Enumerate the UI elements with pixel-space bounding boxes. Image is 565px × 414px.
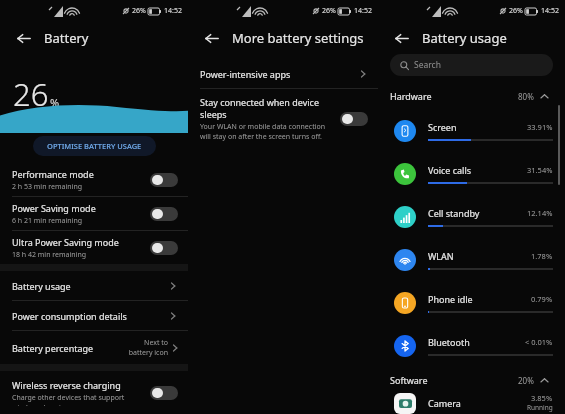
staticText: battery icon: [128, 348, 168, 358]
staticText: will stay on after the screen turns off.: [200, 132, 322, 142]
other: Back: [394, 31, 409, 46]
button[interactable]: Power-intensive apps: [188, 60, 378, 88]
button[interactable]: Stay connected when device sleeps: [188, 89, 378, 149]
button[interactable]: Camera: [378, 393, 565, 414]
button[interactable]: Back: [390, 27, 412, 49]
staticText: Battery usage: [422, 29, 507, 47]
staticText: Running: [527, 403, 553, 412]
button[interactable]: Ultra Power Saving mode: [0, 231, 188, 264]
staticText: < 0.01%: [525, 337, 553, 347]
staticText: More battery settings: [232, 29, 364, 47]
button[interactable]: Battery percentage: [0, 331, 188, 364]
staticText: 1.78%: [531, 251, 553, 261]
button[interactable]: Phone idle: [378, 281, 565, 324]
staticText: Screen: [428, 121, 527, 133]
staticText: Software: [390, 374, 518, 386]
staticText: 26%: [322, 6, 336, 16]
button[interactable]: Back: [200, 27, 222, 49]
button[interactable]: Performance mode: [0, 163, 188, 196]
staticText: 33.91%: [527, 122, 553, 132]
button[interactable]: [340, 112, 368, 126]
button[interactable]: Battery usage: [0, 271, 188, 300]
button[interactable]: [150, 241, 178, 255]
staticText: 20%: [518, 375, 534, 386]
button[interactable]: [150, 207, 178, 221]
staticText: Battery usage: [12, 280, 168, 292]
button[interactable]: Voice calls: [378, 152, 565, 195]
staticText: 26%: [132, 6, 146, 16]
staticText: 26: [13, 73, 49, 115]
staticText: Stay connected when device sleeps: [200, 96, 340, 120]
staticText: 3.85%: [531, 393, 553, 403]
staticText: Search: [414, 59, 441, 71]
staticText: 6 h 21 min remaining: [12, 216, 83, 226]
staticText: Performance mode: [12, 168, 94, 180]
staticText: 31.54%: [527, 165, 553, 175]
button[interactable]: Search: [390, 54, 553, 76]
staticText: 0.79%: [531, 294, 553, 304]
staticText: Cell standby: [428, 207, 527, 219]
staticText: wireless charging.: [12, 403, 72, 406]
other: Back: [16, 31, 31, 46]
staticText: Your WLAN or mobile data connection: [200, 122, 326, 132]
button[interactable]: Cell standby: [378, 195, 565, 238]
staticText: Power Saving mode: [12, 202, 96, 214]
staticText: 80%: [518, 91, 534, 102]
button[interactable]: Back: [12, 27, 34, 49]
staticText: Voice calls: [428, 164, 527, 176]
staticText: Phone idle: [428, 293, 531, 305]
staticText: WLAN: [428, 250, 531, 262]
staticText: Ultra Power Saving mode: [12, 236, 119, 248]
staticText: 14:52: [354, 6, 372, 16]
button[interactable]: Wireless reverse charging: [0, 371, 188, 414]
staticText: OPTIMISE BATTERY USAGE: [47, 141, 142, 151]
staticText: Bluetooth: [428, 336, 525, 348]
button[interactable]: Collapse: [540, 376, 549, 385]
staticText: Wireless reverse charging: [12, 379, 121, 391]
button[interactable]: OPTIMISE BATTERY USAGE: [33, 136, 156, 156]
staticText: Hardware: [390, 90, 518, 102]
staticText: Power-intensive apps: [200, 68, 358, 80]
button[interactable]: Collapse: [540, 92, 549, 101]
staticText: 2 h 53 min remaining: [12, 182, 83, 192]
staticText: Battery percentage: [12, 342, 128, 354]
staticText: 14:52: [541, 6, 559, 16]
other: Back: [204, 31, 219, 46]
staticText: 14:52: [164, 6, 182, 16]
staticText: Next to: [144, 338, 168, 348]
button[interactable]: Screen: [378, 109, 565, 152]
button[interactable]: [150, 386, 178, 400]
staticText: %: [50, 95, 60, 110]
staticText: Charge other devices that support: [12, 393, 125, 403]
staticText: Power consumption details: [12, 310, 168, 322]
button[interactable]: Power Saving mode: [0, 197, 188, 230]
button[interactable]: Power consumption details: [0, 301, 188, 330]
staticText: Battery: [44, 29, 89, 47]
button[interactable]: WLAN: [378, 238, 565, 281]
button[interactable]: Bluetooth: [378, 324, 565, 367]
staticText: 12.14%: [527, 208, 553, 218]
staticText: 26%: [509, 6, 523, 16]
button[interactable]: [150, 173, 178, 187]
staticText: Camera: [428, 397, 527, 409]
staticText: 18 h 42 min remaining: [12, 250, 87, 260]
